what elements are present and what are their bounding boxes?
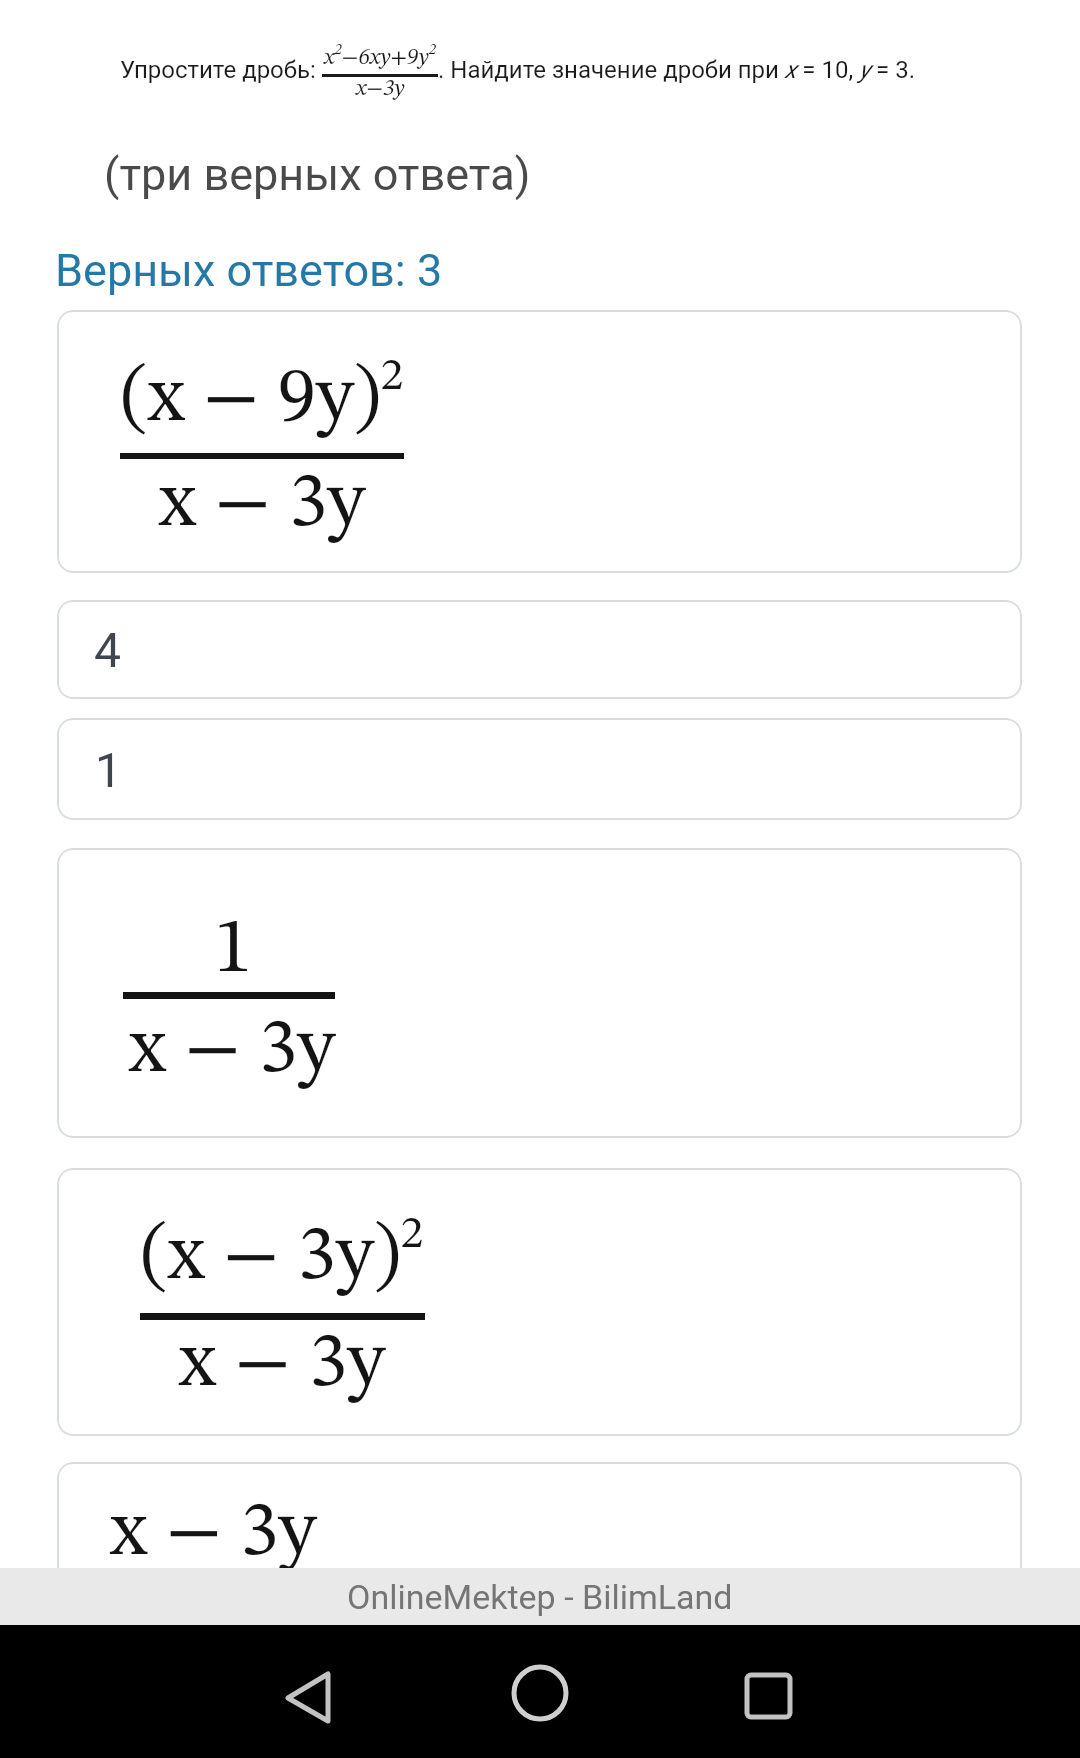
staticText: x − 3y bbox=[57, 1012, 452, 1090]
staticText: (x − 9y)2 bbox=[57, 354, 482, 438]
staticText: Верных ответов: 3 bbox=[55, 244, 443, 297]
staticText: x−3y bbox=[356, 77, 405, 100]
staticText: x − 3y bbox=[57, 466, 482, 544]
button[interactable]: 4 bbox=[57, 600, 1022, 699]
staticText: 1 bbox=[95, 742, 122, 798]
button[interactable]: 1 bbox=[57, 848, 1022, 1138]
button[interactable]: (x − 9y)2 bbox=[57, 310, 1022, 573]
staticText: x2−6xy+9y2 bbox=[324, 43, 437, 69]
button[interactable] bbox=[263, 1651, 353, 1741]
button[interactable]: 1 bbox=[57, 718, 1022, 820]
staticText: . Найдите значение дроби при x = 10, y =… bbox=[438, 56, 916, 84]
staticText: 1 bbox=[57, 912, 453, 990]
button[interactable] bbox=[723, 1648, 813, 1738]
button[interactable]: x − 3y bbox=[57, 1462, 1022, 1642]
staticText: OnlineMektep - BilimLand bbox=[347, 1577, 733, 1617]
button[interactable] bbox=[495, 1648, 585, 1738]
staticText: x − 3y bbox=[62, 1326, 502, 1404]
staticText: (x − 3y)2 bbox=[62, 1212, 502, 1296]
staticText: 4 bbox=[94, 622, 121, 678]
staticText: x − 3y bbox=[110, 1495, 550, 1573]
button[interactable]: (x − 3y)2 bbox=[57, 1168, 1022, 1436]
staticText: Упростите дробь: bbox=[120, 56, 322, 84]
staticText: (три верных ответа) bbox=[104, 148, 531, 201]
